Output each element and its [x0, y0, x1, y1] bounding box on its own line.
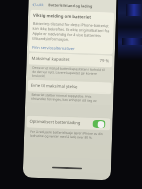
button[interactable]: Evne til maksimal ytelse — [27, 80, 112, 94]
button[interactable]: Lukk — [31, 2, 44, 7]
staticText: Optimalisert batterilading — [29, 119, 81, 126]
button[interactable]: Optimised battery charging toggle — [92, 120, 106, 128]
staticText: Evne til maksimal ytelse — [31, 83, 78, 90]
staticText: Maksimal kapasitet — [31, 56, 70, 63]
button[interactable]: Maksimal kapasitet — [28, 53, 113, 67]
button[interactable]: Optimalisert batterilading — [26, 116, 111, 130]
staticText: Lukk — [35, 2, 44, 7]
staticText: For å redusere batterislitasje lærer iPh… — [30, 130, 105, 140]
staticText: Batteriet støtter normal toppytelse. Hvi… — [31, 93, 106, 103]
staticText: Batteriets tilstand for dette iPhone-bat… — [32, 21, 111, 43]
button[interactable]: Finn servicealternativer — [32, 45, 75, 51]
staticText: 79 % — [99, 58, 110, 64]
staticText: Dette er et mål på batterikapasiteten i … — [32, 66, 107, 80]
staticText: Batteritilstand og lading — [48, 2, 92, 9]
staticText: Viktig melding om batteriet — [33, 13, 92, 21]
